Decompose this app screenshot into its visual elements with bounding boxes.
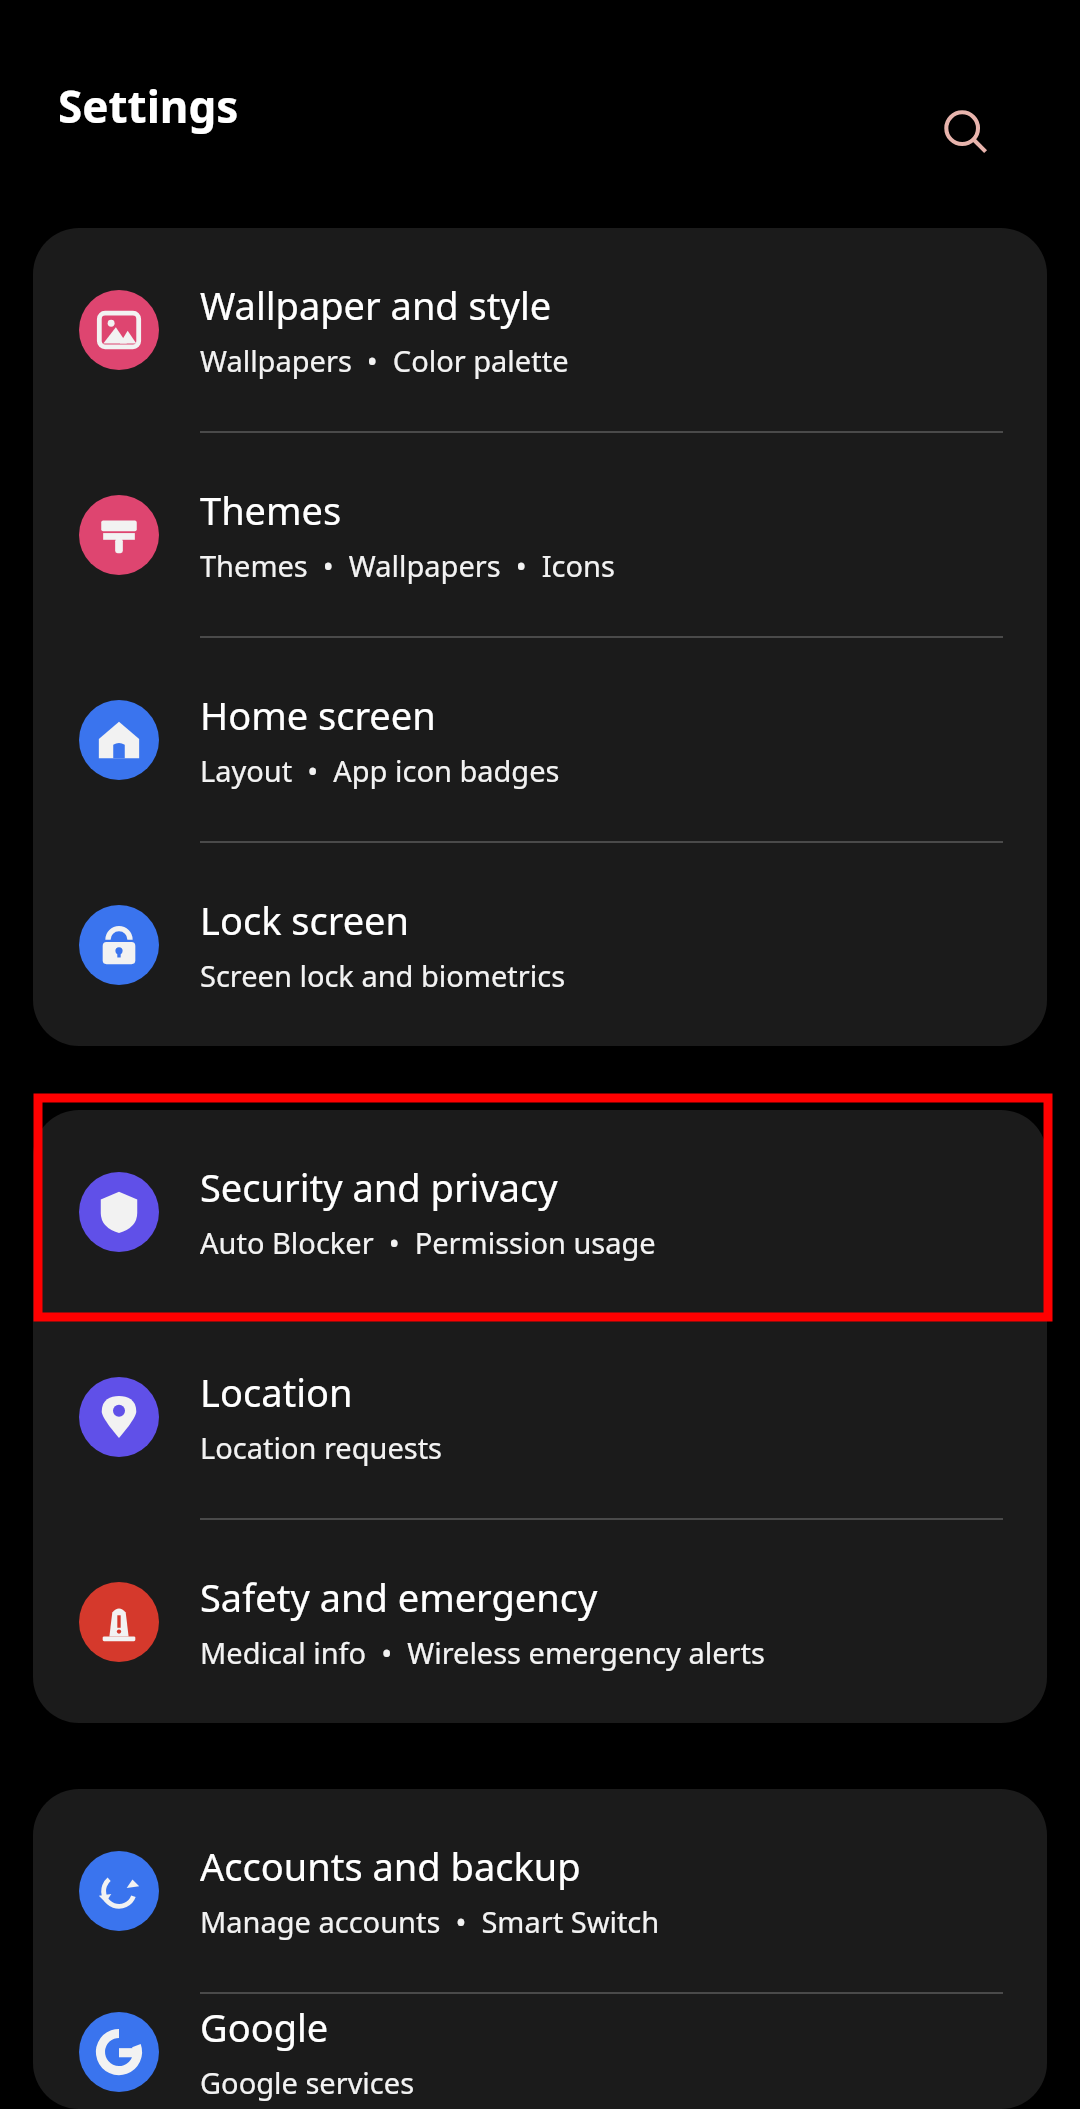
- button[interactable]: Home screen: [33, 638, 1047, 841]
- staticText: Lock screen: [200, 894, 410, 946]
- button[interactable]: Wallpaper and style: [33, 228, 1047, 431]
- button[interactable]: Accounts and backup: [33, 1789, 1047, 1992]
- button[interactable]: Themes: [33, 433, 1047, 636]
- button[interactable]: Search: [930, 96, 1002, 168]
- staticText: Wallpaper and style: [200, 279, 552, 331]
- staticText: Themes • Wallpapers • Icons: [200, 546, 615, 585]
- staticText: Safety and emergency: [200, 1571, 598, 1623]
- button[interactable]: Safety and emergency: [33, 1520, 1047, 1723]
- staticText: Google: [200, 2001, 329, 2053]
- staticText: Layout • App icon badges: [200, 751, 560, 790]
- staticText: Themes: [200, 484, 342, 536]
- staticText: Medical info • Wireless emergency alerts: [200, 1633, 765, 1672]
- button[interactable]: Lock screen: [33, 843, 1047, 1046]
- staticText: Location: [200, 1366, 353, 1418]
- staticText: Auto Blocker • Permission usage: [200, 1223, 656, 1262]
- staticText: Google services: [200, 2063, 415, 2102]
- staticText: Security and privacy: [200, 1161, 558, 1213]
- staticText: Wallpapers • Color palette: [200, 341, 569, 380]
- staticText: Settings: [58, 76, 239, 136]
- button[interactable]: Google: [33, 1994, 1047, 2109]
- button[interactable]: Location: [33, 1315, 1047, 1518]
- button[interactable]: Security and privacy: [33, 1110, 1047, 1313]
- staticText: Location requests: [200, 1428, 443, 1467]
- staticText: Accounts and backup: [200, 1840, 581, 1892]
- staticText: Manage accounts • Smart Switch: [200, 1902, 660, 1941]
- staticText: Home screen: [200, 689, 436, 741]
- staticText: Screen lock and biometrics: [200, 956, 566, 995]
